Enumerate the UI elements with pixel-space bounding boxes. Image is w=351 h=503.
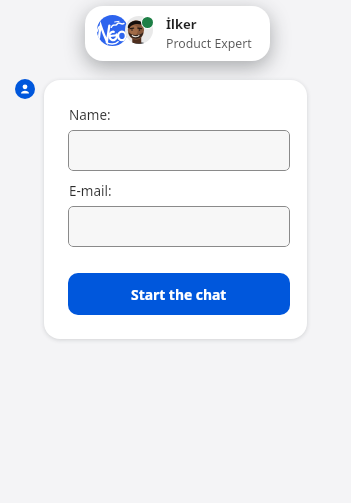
staticText: İlker — [166, 15, 197, 33]
staticText: E-mail: — [69, 182, 112, 200]
button[interactable]: İlker — [85, 6, 270, 61]
button[interactable] — [68, 206, 290, 247]
staticText: Product Expert — [166, 35, 252, 52]
other: Agent avatar — [15, 79, 35, 99]
button[interactable] — [68, 130, 290, 171]
staticText: Start the chat — [131, 285, 227, 304]
button[interactable]: Start the chat — [68, 273, 290, 315]
staticText: Name: — [69, 106, 111, 124]
